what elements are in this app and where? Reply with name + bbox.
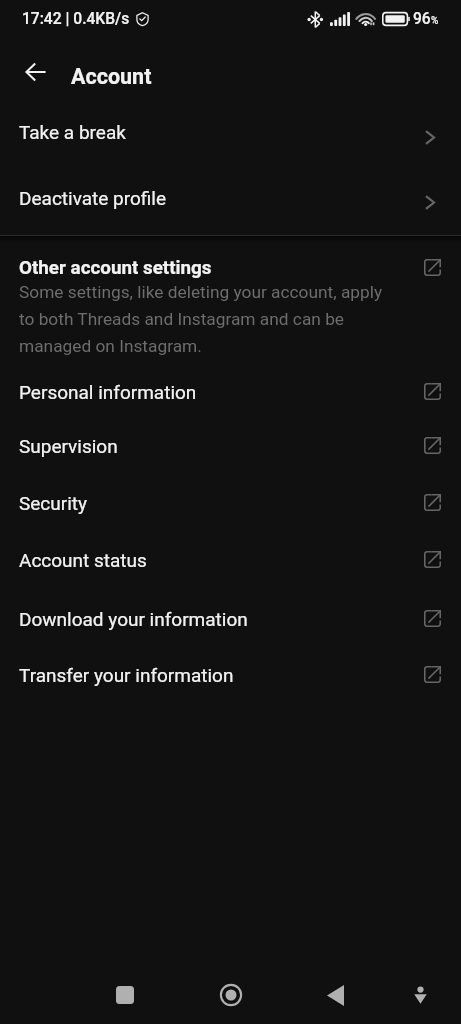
staticText: 96 [413,10,431,28]
button[interactable]: Deactivate profile [0,165,461,230]
staticText: % [431,15,439,27]
staticText: Personal information [19,381,197,403]
staticText: Download your information [19,608,248,630]
button[interactable]: Back [16,52,56,92]
button[interactable]: Account status [0,531,461,588]
button[interactable]: Recents [101,971,149,1019]
button[interactable]: Personal information [0,363,461,420]
button[interactable]: Download your information [0,590,461,647]
button[interactable]: Supervision [0,417,461,474]
staticText: Supervision [19,435,118,457]
button[interactable]: Other account settings [0,253,461,363]
staticText: Account status [19,549,147,571]
staticText: Other account settings [19,257,212,279]
button[interactable]: Hide keyboard [396,971,444,1019]
button[interactable]: Home [207,971,255,1019]
staticText: Account [71,64,152,89]
button[interactable]: Security [0,474,461,531]
button[interactable]: Back [311,971,359,1019]
staticText: 17:42 | 0.4KB/s [22,10,130,28]
staticText: Some settings, like deleting your accoun… [19,282,383,356]
staticText: Deactivate profile [19,187,167,209]
button[interactable]: Transfer your information [0,646,461,703]
staticText: Security [19,492,88,514]
button[interactable]: Take a break [0,99,461,165]
staticText: Transfer your information [19,664,234,686]
staticText: Take a break [19,121,126,143]
